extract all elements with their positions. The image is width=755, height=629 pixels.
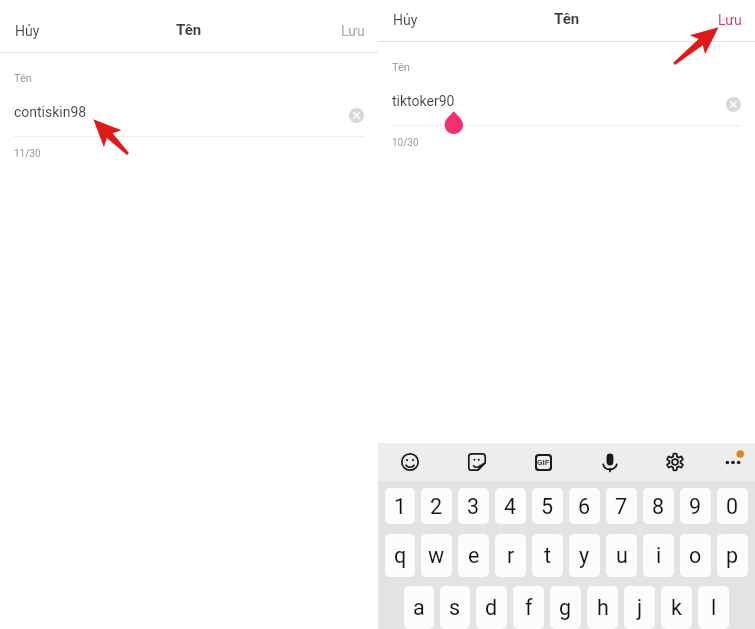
button[interactable]: w (421, 534, 452, 577)
button[interactable]: 5 (532, 488, 563, 524)
staticText: GIF (537, 458, 550, 467)
staticText: 6 (578, 494, 591, 519)
staticText: k (671, 595, 682, 620)
staticText: Hủy (393, 12, 418, 28)
staticText: l (711, 595, 717, 620)
staticText: o (689, 543, 702, 568)
staticText: 4 (504, 494, 517, 519)
button[interactable]: q (385, 534, 415, 577)
button[interactable]: t (532, 534, 563, 577)
staticText: 10/30 (392, 137, 419, 149)
staticText: a (413, 595, 425, 620)
staticText: p (726, 543, 739, 568)
button[interactable]: l (698, 586, 729, 629)
staticText: u (616, 543, 628, 568)
staticText: t (544, 543, 552, 568)
button[interactable]: e (458, 534, 489, 577)
button[interactable]: 3 (458, 488, 489, 524)
button[interactable]: i (643, 534, 674, 577)
staticText: 0 (726, 494, 739, 519)
button[interactable]: 9 (680, 488, 711, 524)
button[interactable]: 6 (569, 488, 600, 524)
staticText: 3 (467, 494, 480, 519)
staticText: w (428, 543, 445, 568)
button[interactable]: s (440, 586, 470, 629)
staticText: i (656, 543, 662, 568)
staticText: e (468, 543, 480, 568)
button[interactable]: More options (714, 443, 752, 481)
staticText: 7 (615, 494, 628, 519)
button[interactable]: p (717, 534, 748, 577)
button[interactable]: a (404, 586, 434, 629)
button[interactable]: 8 (643, 488, 674, 524)
staticText: 9 (689, 494, 702, 519)
staticText: Tên (392, 61, 410, 74)
button[interactable]: d (476, 586, 507, 629)
staticText: 1 (394, 494, 407, 519)
staticText: q (394, 543, 407, 568)
button[interactable]: Hủy (0, 13, 55, 49)
button[interactable]: Settings (656, 443, 694, 481)
button[interactable]: Voice input (591, 443, 629, 481)
staticText: f (525, 595, 533, 620)
button[interactable]: 7 (606, 488, 637, 524)
staticText: 5 (541, 494, 554, 519)
button[interactable]: Emoji (391, 443, 429, 481)
staticText: Lưu (341, 23, 365, 39)
button[interactable]: h (587, 586, 618, 629)
staticText: j (637, 595, 643, 620)
button[interactable]: Clear text (722, 93, 744, 115)
button[interactable]: f (513, 586, 544, 629)
staticText: 11/30 (14, 148, 41, 160)
staticText: Hủy (15, 23, 40, 39)
staticText: 8 (652, 494, 665, 519)
button[interactable]: GIF (524, 443, 562, 481)
staticText: h (597, 595, 609, 620)
button[interactable]: Lưu (705, 2, 755, 38)
staticText: Tên (176, 21, 202, 39)
button[interactable]: r (495, 534, 526, 577)
button[interactable]: 2 (421, 488, 452, 524)
staticText: d (485, 595, 498, 620)
button[interactable]: y (569, 534, 600, 577)
staticText: s (449, 595, 461, 620)
button[interactable]: Hủy (378, 2, 433, 38)
button[interactable]: j (624, 586, 655, 629)
button[interactable]: Clear text (345, 104, 367, 126)
staticText: g (559, 595, 572, 620)
button[interactable]: u (606, 534, 637, 577)
staticText: Tên (14, 72, 32, 85)
staticText: tiktoker90 (392, 93, 455, 109)
button[interactable]: g (550, 586, 581, 629)
button[interactable]: Stickers (458, 443, 496, 481)
staticText: Lưu (718, 12, 742, 28)
staticText: y (579, 543, 590, 568)
staticText: contiskin98 (14, 104, 87, 120)
staticText: 2 (430, 494, 443, 519)
button[interactable]: Lưu (328, 13, 378, 49)
button[interactable]: k (661, 586, 692, 629)
button[interactable]: 0 (717, 488, 748, 524)
staticText: Tên (554, 10, 580, 28)
staticText: r (507, 543, 515, 568)
button[interactable]: o (680, 534, 711, 577)
button[interactable]: 1 (385, 488, 415, 524)
button[interactable]: 4 (495, 488, 526, 524)
